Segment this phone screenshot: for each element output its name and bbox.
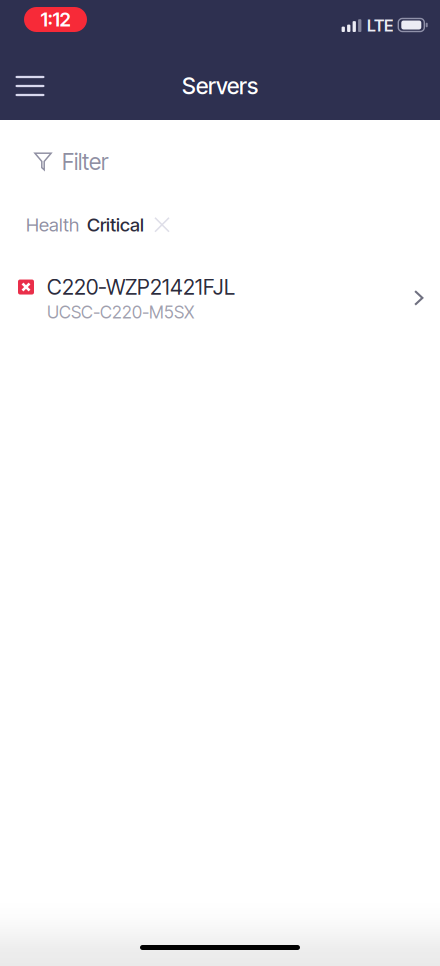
button[interactable]: Menu (0, 58, 60, 114)
staticText: 1:12 (40, 8, 70, 31)
staticText: UCSC-C220-M5SX (47, 302, 194, 323)
staticText: Servers (182, 72, 258, 100)
staticText: LTE (367, 15, 393, 36)
staticText: Filter (62, 148, 108, 175)
staticText: C220-WZP21421FJL (47, 274, 235, 300)
button[interactable]: C220-WZP21421FJL (0, 256, 440, 333)
staticText: Health (26, 213, 79, 236)
button[interactable]: Remove Health filter (152, 215, 172, 235)
button[interactable]: Filter (0, 120, 440, 189)
staticText: Critical (87, 213, 144, 236)
